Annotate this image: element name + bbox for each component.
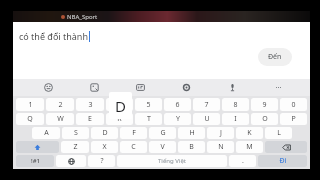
staticText: 6 — [175, 100, 180, 110]
staticText: 1 — [28, 100, 33, 110]
staticText: !#1 — [31, 157, 40, 165]
button[interactable]: Backspace — [265, 141, 307, 153]
button[interactable]: T — [135, 113, 162, 125]
button[interactable]: B — [178, 141, 205, 153]
staticText: X — [102, 142, 107, 152]
button[interactable]: Shift — [16, 141, 59, 153]
button[interactable]: I — [222, 113, 249, 125]
staticText: 3 — [88, 100, 93, 110]
staticText: 5 — [146, 100, 151, 110]
staticText: 2 — [58, 100, 63, 110]
button[interactable]: Đi — [258, 155, 307, 167]
button[interactable]: 9 — [251, 98, 278, 111]
button[interactable]: GIF — [133, 80, 148, 95]
staticText: G — [160, 128, 166, 138]
button[interactable]: 2 — [46, 98, 74, 111]
staticText: 0 — [291, 100, 296, 110]
button[interactable]: !#1 — [16, 155, 54, 167]
button[interactable]: Z — [61, 141, 89, 153]
button[interactable]: D — [91, 127, 118, 139]
button[interactable]: C — [120, 141, 147, 153]
staticText: D — [102, 128, 108, 138]
button[interactable]: J — [207, 127, 234, 139]
button[interactable]: 6 — [164, 98, 191, 111]
button[interactable]: E — [76, 113, 104, 125]
staticText: Q — [27, 114, 33, 124]
button[interactable]: 1 — [16, 98, 44, 111]
button[interactable]: R — [106, 113, 133, 125]
button[interactable]: 0 — [280, 98, 307, 111]
button[interactable]: Stickers — [87, 80, 102, 95]
button[interactable]: More options — [271, 80, 286, 95]
staticText: 4 — [117, 100, 122, 110]
staticText: 8 — [233, 100, 238, 110]
staticText: Đến — [268, 52, 282, 62]
button[interactable]: V — [149, 141, 176, 153]
staticText: Tiếng Việt — [158, 157, 186, 165]
button[interactable]: A — [32, 127, 60, 139]
staticText: NBA_Sport — [67, 13, 98, 21]
staticText: F — [132, 128, 136, 138]
staticText: H — [189, 128, 195, 138]
button[interactable]: . — [229, 155, 256, 167]
staticText: O — [262, 114, 268, 124]
button[interactable]: 5 — [135, 98, 162, 111]
staticText: S — [74, 128, 78, 138]
button[interactable]: Change keyboard language — [56, 155, 86, 167]
staticText: N — [218, 142, 224, 152]
staticText: R — [117, 114, 122, 124]
staticText: W — [57, 114, 64, 124]
staticText: K — [247, 128, 252, 138]
button[interactable]: Q — [16, 113, 44, 125]
staticText: . — [242, 156, 244, 166]
staticText: D — [115, 96, 126, 116]
staticText: J — [220, 128, 222, 138]
button[interactable]: Emoji — [41, 80, 56, 95]
button[interactable]: 7 — [193, 98, 220, 111]
button[interactable]: Đến — [258, 48, 292, 66]
button[interactable]: 8 — [222, 98, 249, 111]
staticText: 9 — [262, 100, 267, 110]
button[interactable]: Settings — [179, 80, 194, 95]
staticText: Y — [176, 114, 180, 124]
staticText: có thể đổi thành — [19, 30, 88, 42]
button[interactable]: Voice input — [225, 80, 240, 95]
button[interactable]: M — [236, 141, 263, 153]
button[interactable]: H — [178, 127, 205, 139]
button[interactable]: U — [193, 113, 220, 125]
button[interactable]: 3 — [76, 98, 104, 111]
button[interactable]: W — [46, 113, 74, 125]
button[interactable]: S — [62, 127, 89, 139]
staticText: M — [246, 142, 253, 152]
button[interactable]: F — [120, 127, 147, 139]
staticText: Đi — [279, 156, 287, 166]
staticText: Z — [73, 142, 78, 152]
button[interactable]: ? — [88, 155, 115, 167]
staticText: U — [204, 114, 210, 124]
button[interactable]: Y — [164, 113, 191, 125]
button[interactable]: Tiếng Việt — [117, 155, 227, 167]
button[interactable]: N — [207, 141, 234, 153]
staticText: C — [131, 142, 136, 152]
button[interactable]: 4 — [106, 98, 133, 111]
button[interactable]: K — [236, 127, 263, 139]
button[interactable]: X — [91, 141, 118, 153]
staticText: E — [88, 114, 92, 124]
staticText: B — [189, 142, 194, 152]
staticText: A — [44, 128, 49, 138]
button[interactable]: L — [265, 127, 292, 139]
button[interactable]: G — [149, 127, 176, 139]
staticText: ? — [100, 156, 104, 166]
staticText: I — [234, 114, 237, 124]
staticText: L — [277, 128, 281, 138]
staticText: T — [147, 114, 151, 124]
staticText: 7 — [204, 100, 209, 110]
button[interactable]: P — [280, 113, 307, 125]
staticText: P — [291, 114, 296, 124]
staticText: V — [160, 142, 165, 152]
button[interactable]: O — [251, 113, 278, 125]
